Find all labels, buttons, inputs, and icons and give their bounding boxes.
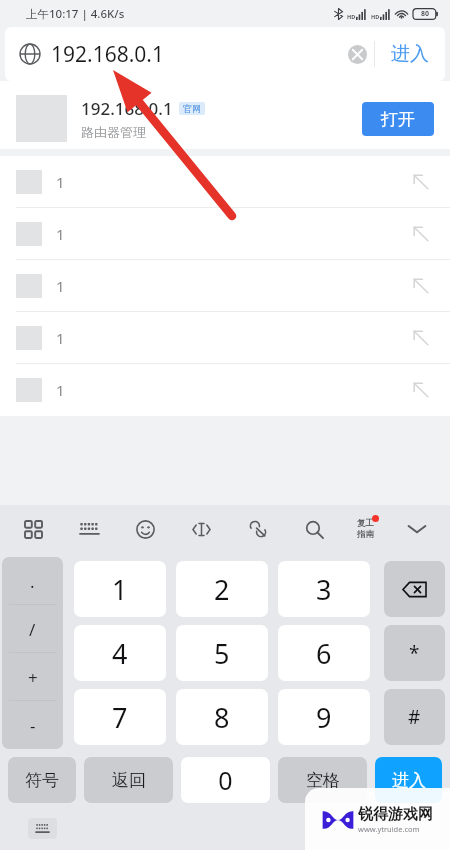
staticText: 3 bbox=[316, 571, 332, 608]
staticText: 8 bbox=[214, 699, 230, 736]
button[interactable]: 0 bbox=[181, 757, 270, 803]
button[interactable]: 进入 bbox=[375, 757, 442, 803]
button[interactable]: + bbox=[2, 653, 63, 701]
staticText: 空格 bbox=[306, 770, 340, 791]
button[interactable]: 9 bbox=[278, 689, 370, 745]
staticText: 6 bbox=[316, 635, 332, 672]
staticText: . bbox=[30, 570, 35, 593]
button[interactable]: 返回 bbox=[84, 757, 173, 803]
button[interactable]: 2 bbox=[176, 561, 268, 617]
staticText: 1 bbox=[56, 328, 408, 348]
button[interactable]: 复工 bbox=[355, 518, 376, 540]
staticText: / bbox=[29, 618, 36, 641]
staticText: 80 bbox=[421, 9, 430, 19]
staticText: 符号 bbox=[25, 770, 59, 791]
staticText: + bbox=[28, 666, 38, 689]
button[interactable]: Keyboard layout bbox=[74, 514, 104, 544]
staticText: 9 bbox=[316, 699, 332, 736]
staticText: 指南 bbox=[357, 529, 374, 540]
staticText: 锐得游戏网 bbox=[358, 805, 433, 824]
staticText: 上午10:17 | 4.6K/s bbox=[26, 6, 125, 22]
staticText: 复工 bbox=[357, 518, 374, 529]
button[interactable]: 1 bbox=[0, 208, 450, 260]
button[interactable]: Fill suggestion bbox=[408, 325, 434, 351]
staticText: # bbox=[408, 704, 421, 730]
button[interactable]: - bbox=[2, 701, 63, 749]
staticText: 5 bbox=[214, 635, 230, 672]
staticText: 1 bbox=[56, 380, 408, 400]
staticText: 2 bbox=[214, 571, 230, 608]
button[interactable]: 打开 bbox=[362, 102, 434, 136]
button[interactable]: # bbox=[384, 689, 445, 745]
button[interactable]: 7 bbox=[74, 689, 166, 745]
button[interactable]: Fill suggestion bbox=[408, 169, 434, 195]
button[interactable]: 1 bbox=[74, 561, 166, 617]
button[interactable]: 5 bbox=[176, 625, 268, 681]
button[interactable]: Clipboard bbox=[243, 514, 273, 544]
button[interactable]: 1 bbox=[0, 312, 450, 364]
button[interactable]: Hide keyboard bbox=[402, 514, 432, 544]
staticText: 打开 bbox=[381, 109, 415, 130]
button[interactable]: 8 bbox=[176, 689, 268, 745]
button[interactable]: Backspace bbox=[384, 561, 445, 617]
button[interactable]: Fill suggestion bbox=[408, 377, 434, 403]
button[interactable]: Quick panel bbox=[18, 514, 48, 544]
button[interactable]: 1 bbox=[0, 260, 450, 312]
staticText: 路由器管理 bbox=[81, 124, 146, 140]
staticText: 1 bbox=[56, 172, 408, 192]
button[interactable]: Clear bbox=[340, 37, 374, 71]
button[interactable]: 6 bbox=[278, 625, 370, 681]
button[interactable]: Emoji bbox=[130, 514, 160, 544]
staticText: 1 bbox=[56, 224, 408, 244]
staticText: 4 bbox=[112, 635, 128, 672]
button[interactable]: * bbox=[384, 625, 445, 681]
button[interactable]: Fill suggestion bbox=[408, 221, 434, 247]
staticText: 进入 bbox=[391, 42, 429, 66]
button[interactable]: Cursor control bbox=[186, 514, 216, 544]
staticText: 192.168.0.1 bbox=[51, 40, 340, 69]
staticText: 1 bbox=[112, 571, 128, 608]
button[interactable]: . bbox=[2, 557, 63, 605]
button[interactable]: 进入 bbox=[375, 27, 445, 81]
staticText: 进入 bbox=[392, 770, 426, 791]
staticText: www.ytruide.com bbox=[358, 824, 420, 834]
button[interactable]: / bbox=[2, 605, 63, 653]
staticText: * bbox=[409, 640, 420, 666]
button[interactable]: 1 bbox=[0, 156, 450, 208]
button[interactable]: 空格 bbox=[278, 757, 367, 803]
staticText: 官网 bbox=[183, 103, 201, 114]
staticText: 7 bbox=[112, 699, 128, 736]
staticText: HD bbox=[371, 13, 380, 20]
staticText: HD bbox=[347, 13, 356, 20]
button[interactable]: 3 bbox=[278, 561, 370, 617]
button[interactable]: Search bbox=[299, 514, 329, 544]
staticText: 192.168.0.1 bbox=[81, 97, 173, 120]
staticText: 返回 bbox=[112, 770, 146, 791]
button[interactable]: 4 bbox=[74, 625, 166, 681]
button[interactable]: Fill suggestion bbox=[408, 273, 434, 299]
staticText: 1 bbox=[56, 276, 408, 296]
button[interactable]: 符号 bbox=[8, 757, 76, 803]
staticText: - bbox=[30, 714, 36, 737]
staticText: 0 bbox=[218, 763, 233, 797]
button[interactable]: 1 bbox=[0, 364, 450, 416]
button[interactable]: Switch keyboard bbox=[28, 818, 57, 839]
